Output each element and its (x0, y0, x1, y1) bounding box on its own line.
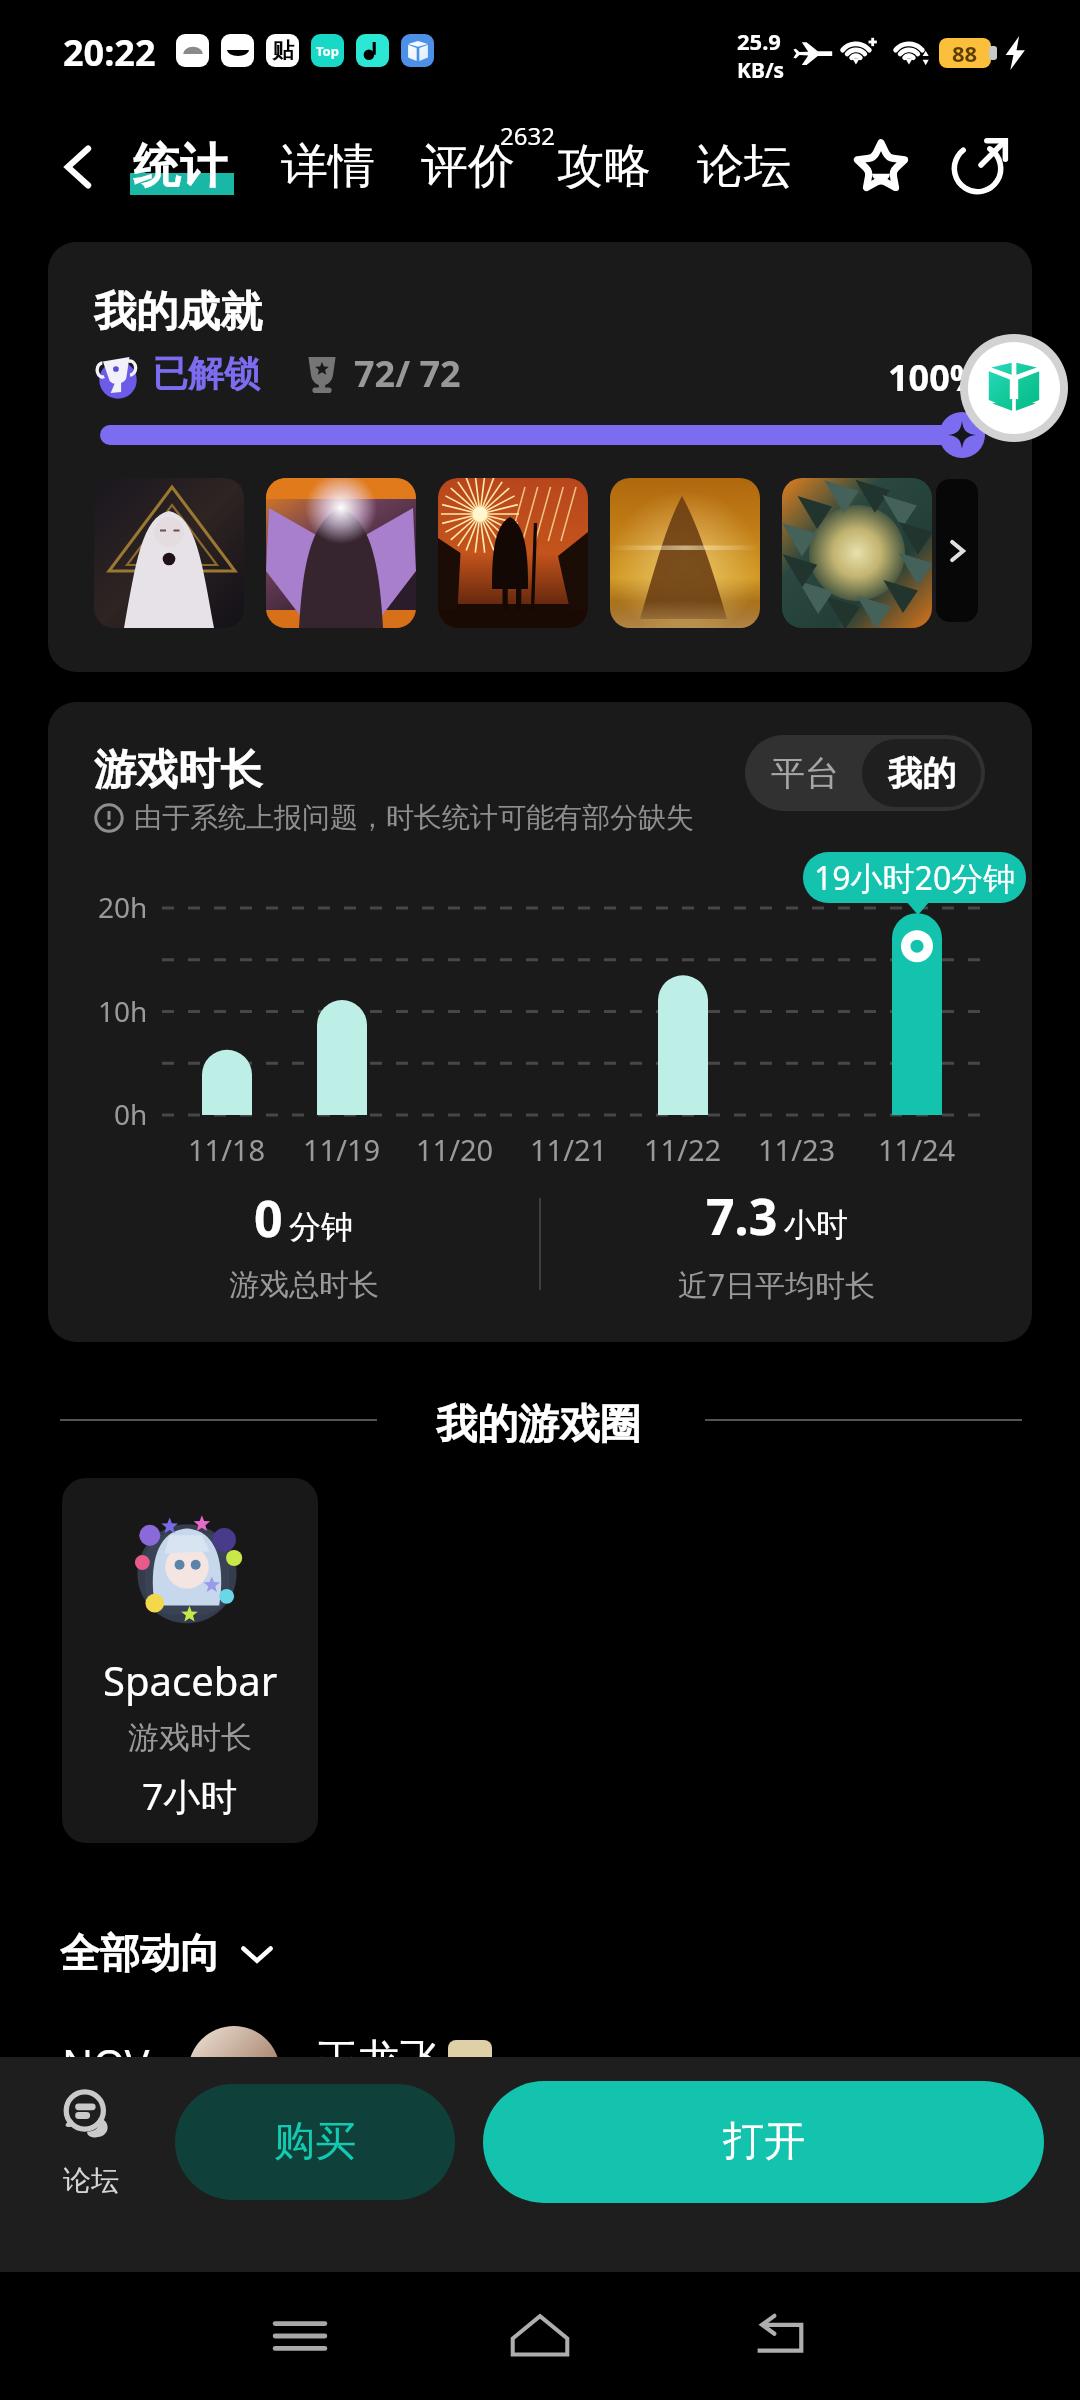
button[interactable]: 购买 (175, 2084, 455, 2200)
staticText: 王龙飞 (316, 2034, 442, 2087)
button[interactable]: Home (490, 2286, 590, 2386)
button[interactable]: 论坛 (36, 2087, 146, 2198)
button[interactable]: 平台 (745, 735, 865, 811)
staticText: 贴 (272, 37, 294, 65)
staticText: 统计 (133, 137, 227, 196)
staticText: 11/19 (303, 1130, 381, 1169)
button[interactable] (94, 478, 244, 628)
staticText: 平台 (771, 752, 839, 795)
staticText: 由于系统上报问题，时长统计可能有部分缺失 (134, 800, 694, 835)
staticText: 11/21 (530, 1130, 608, 1169)
staticText: 7小时 (142, 1770, 238, 1821)
staticText: 19小时20分钟 (814, 856, 1016, 900)
button[interactable] (782, 478, 932, 628)
staticText: 100% (888, 353, 983, 402)
button[interactable]: More achievements (936, 479, 978, 622)
staticText: 近7日平均时长 (678, 1264, 876, 1305)
staticText: 10h (98, 992, 148, 1030)
button[interactable] (266, 478, 416, 628)
staticText: 11/18 (188, 1130, 266, 1169)
staticText: 20h (98, 888, 148, 926)
staticText: 11/23 (758, 1130, 836, 1169)
staticText: 购买 (274, 2116, 356, 2168)
button[interactable]: 统计 (130, 137, 234, 196)
button[interactable]: Back (46, 135, 110, 199)
button[interactable]: 我的成就 (48, 242, 1032, 672)
button[interactable] (438, 478, 588, 628)
button[interactable]: Back (730, 2286, 830, 2386)
button[interactable] (610, 478, 760, 628)
button[interactable]: App logo (960, 334, 1068, 442)
staticText: 72/ 72 (354, 349, 461, 398)
staticText: 分钟 (289, 1207, 353, 1247)
staticText: 已解锁 (152, 351, 260, 396)
button[interactable]: 攻略 (557, 137, 651, 196)
staticText: 评价 (421, 137, 515, 196)
staticText: 0 (254, 1184, 283, 1252)
staticText: 0h (114, 1095, 148, 1133)
staticText: 游戏时长 (128, 1718, 252, 1757)
button[interactable]: 详情 (281, 137, 375, 196)
staticText: Spacebar (103, 1653, 278, 1707)
staticText: KB/s (737, 56, 785, 85)
staticText: 20:22 (63, 28, 156, 77)
staticText: 小时 (784, 1205, 848, 1245)
staticText: 游戏总时长 (229, 1266, 379, 1304)
staticText: 我的成就 (94, 286, 262, 339)
button[interactable]: 评价 (421, 137, 515, 196)
staticText: Top (316, 42, 339, 60)
staticText: 我的游戏圈 (436, 1399, 641, 1451)
button[interactable]: Spacebar (62, 1478, 318, 1843)
staticText: 88 (952, 38, 978, 68)
staticText: 打开 (723, 2116, 805, 2168)
button[interactable]: Favorite (845, 129, 917, 201)
button[interactable]: 打开 (483, 2081, 1044, 2203)
staticText: 全部动向 (60, 1928, 220, 1978)
button[interactable]: 全部动向 (60, 1928, 276, 1978)
button[interactable]: Share (945, 129, 1017, 201)
staticText: 7.3 (706, 1182, 778, 1250)
staticText: 11/22 (644, 1130, 722, 1169)
staticText: NOV (62, 2036, 150, 2092)
staticText: 我的 (888, 752, 956, 795)
staticText: 11/24 (878, 1130, 956, 1169)
staticText: 论坛 (63, 2163, 119, 2198)
button[interactable]: Recents (250, 2286, 350, 2386)
staticText: 2632 (500, 119, 555, 152)
button[interactable]: 论坛 (697, 137, 791, 196)
staticText: 游戏时长 (94, 744, 262, 797)
staticText: 11/20 (416, 1130, 494, 1169)
staticText: 25.9 (737, 26, 781, 56)
button[interactable]: 我的 (862, 739, 981, 807)
